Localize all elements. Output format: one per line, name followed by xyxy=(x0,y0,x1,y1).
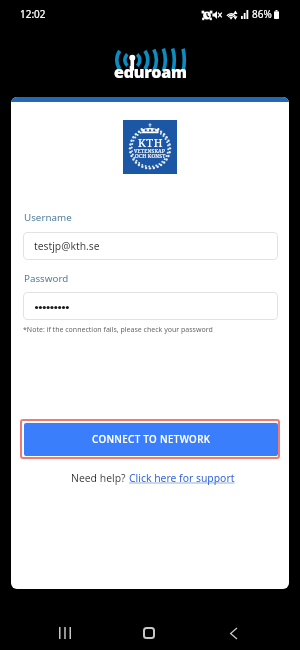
staticText: *Note: if the connection fails, please c… xyxy=(23,325,213,335)
staticText: Password xyxy=(24,272,69,285)
button[interactable]: Back xyxy=(205,616,262,650)
button[interactable]: CONNECT TO NETWORK xyxy=(24,423,278,456)
button[interactable]: testjp@kth.se xyxy=(23,232,278,260)
staticText: Need help? xyxy=(71,471,129,485)
staticText: testjp@kth.se xyxy=(34,239,100,253)
staticText: VETENSKAP xyxy=(134,148,166,155)
staticText: 86% xyxy=(252,7,272,21)
button[interactable]: Home xyxy=(120,616,177,650)
staticText: KTH xyxy=(138,135,163,150)
button[interactable]: Recent apps xyxy=(36,616,93,650)
staticText: CONNECT TO NETWORK xyxy=(92,433,211,446)
staticText: OCH KONST xyxy=(135,153,166,160)
button[interactable]: Click here for support xyxy=(129,471,235,485)
staticText: Username xyxy=(24,211,72,224)
button[interactable]: Password xyxy=(23,292,278,320)
staticText: 12:02 xyxy=(20,7,46,21)
staticText: eduroam xyxy=(114,61,187,83)
